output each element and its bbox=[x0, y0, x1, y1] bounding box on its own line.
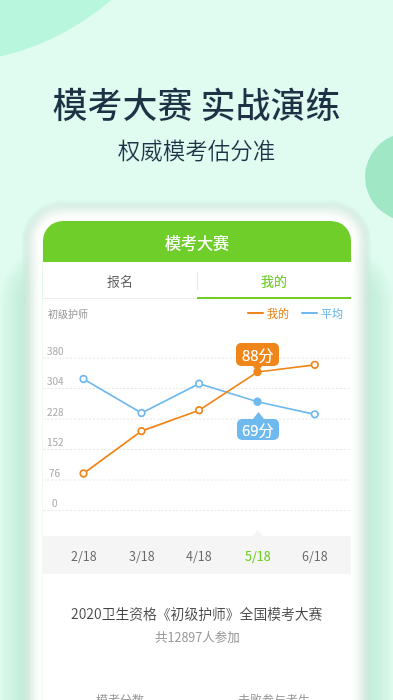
button[interactable]: 3/18 bbox=[122, 545, 162, 565]
staticText: 2020卫生资格《初级护师》全国模考大赛 bbox=[71, 603, 323, 623]
staticText: 228 bbox=[47, 404, 64, 418]
staticText: 共12897人参加 bbox=[155, 627, 240, 645]
staticText: 权威模考估分准 bbox=[0, 133, 393, 166]
staticText: 4/18 bbox=[186, 546, 212, 564]
button[interactable]: 5/18 bbox=[238, 545, 278, 565]
button[interactable]: 报名 bbox=[43, 262, 197, 299]
button[interactable]: 2/18 bbox=[64, 545, 104, 565]
staticText: 模考分数 bbox=[96, 691, 145, 700]
staticText: 平均 bbox=[321, 305, 343, 320]
staticText: 报名 bbox=[107, 271, 134, 290]
staticText: 88分 bbox=[242, 344, 274, 366]
staticText: 76 bbox=[49, 465, 61, 479]
button[interactable]: 4/18 bbox=[179, 545, 219, 565]
button[interactable]: 我的 bbox=[197, 262, 351, 299]
staticText: 我的 bbox=[261, 271, 288, 290]
staticText: 69分 bbox=[242, 419, 274, 440]
staticText: 2/18 bbox=[71, 546, 97, 564]
staticText: 6/18 bbox=[302, 546, 328, 564]
staticText: 5/18 bbox=[245, 546, 271, 564]
staticText: 304 bbox=[47, 373, 64, 387]
staticText: 我的 bbox=[267, 305, 289, 320]
staticText: 模考大赛 bbox=[165, 230, 230, 253]
button[interactable]: 6/18 bbox=[295, 545, 335, 565]
staticText: 3/18 bbox=[129, 546, 155, 564]
staticText: 击败参与考生 bbox=[238, 691, 311, 700]
staticText: 380 bbox=[47, 343, 64, 357]
staticText: 152 bbox=[47, 434, 64, 448]
staticText: 模考大赛 实战演练 bbox=[0, 77, 393, 128]
staticText: 初级护师 bbox=[48, 306, 88, 320]
staticText: 0 bbox=[52, 495, 58, 509]
